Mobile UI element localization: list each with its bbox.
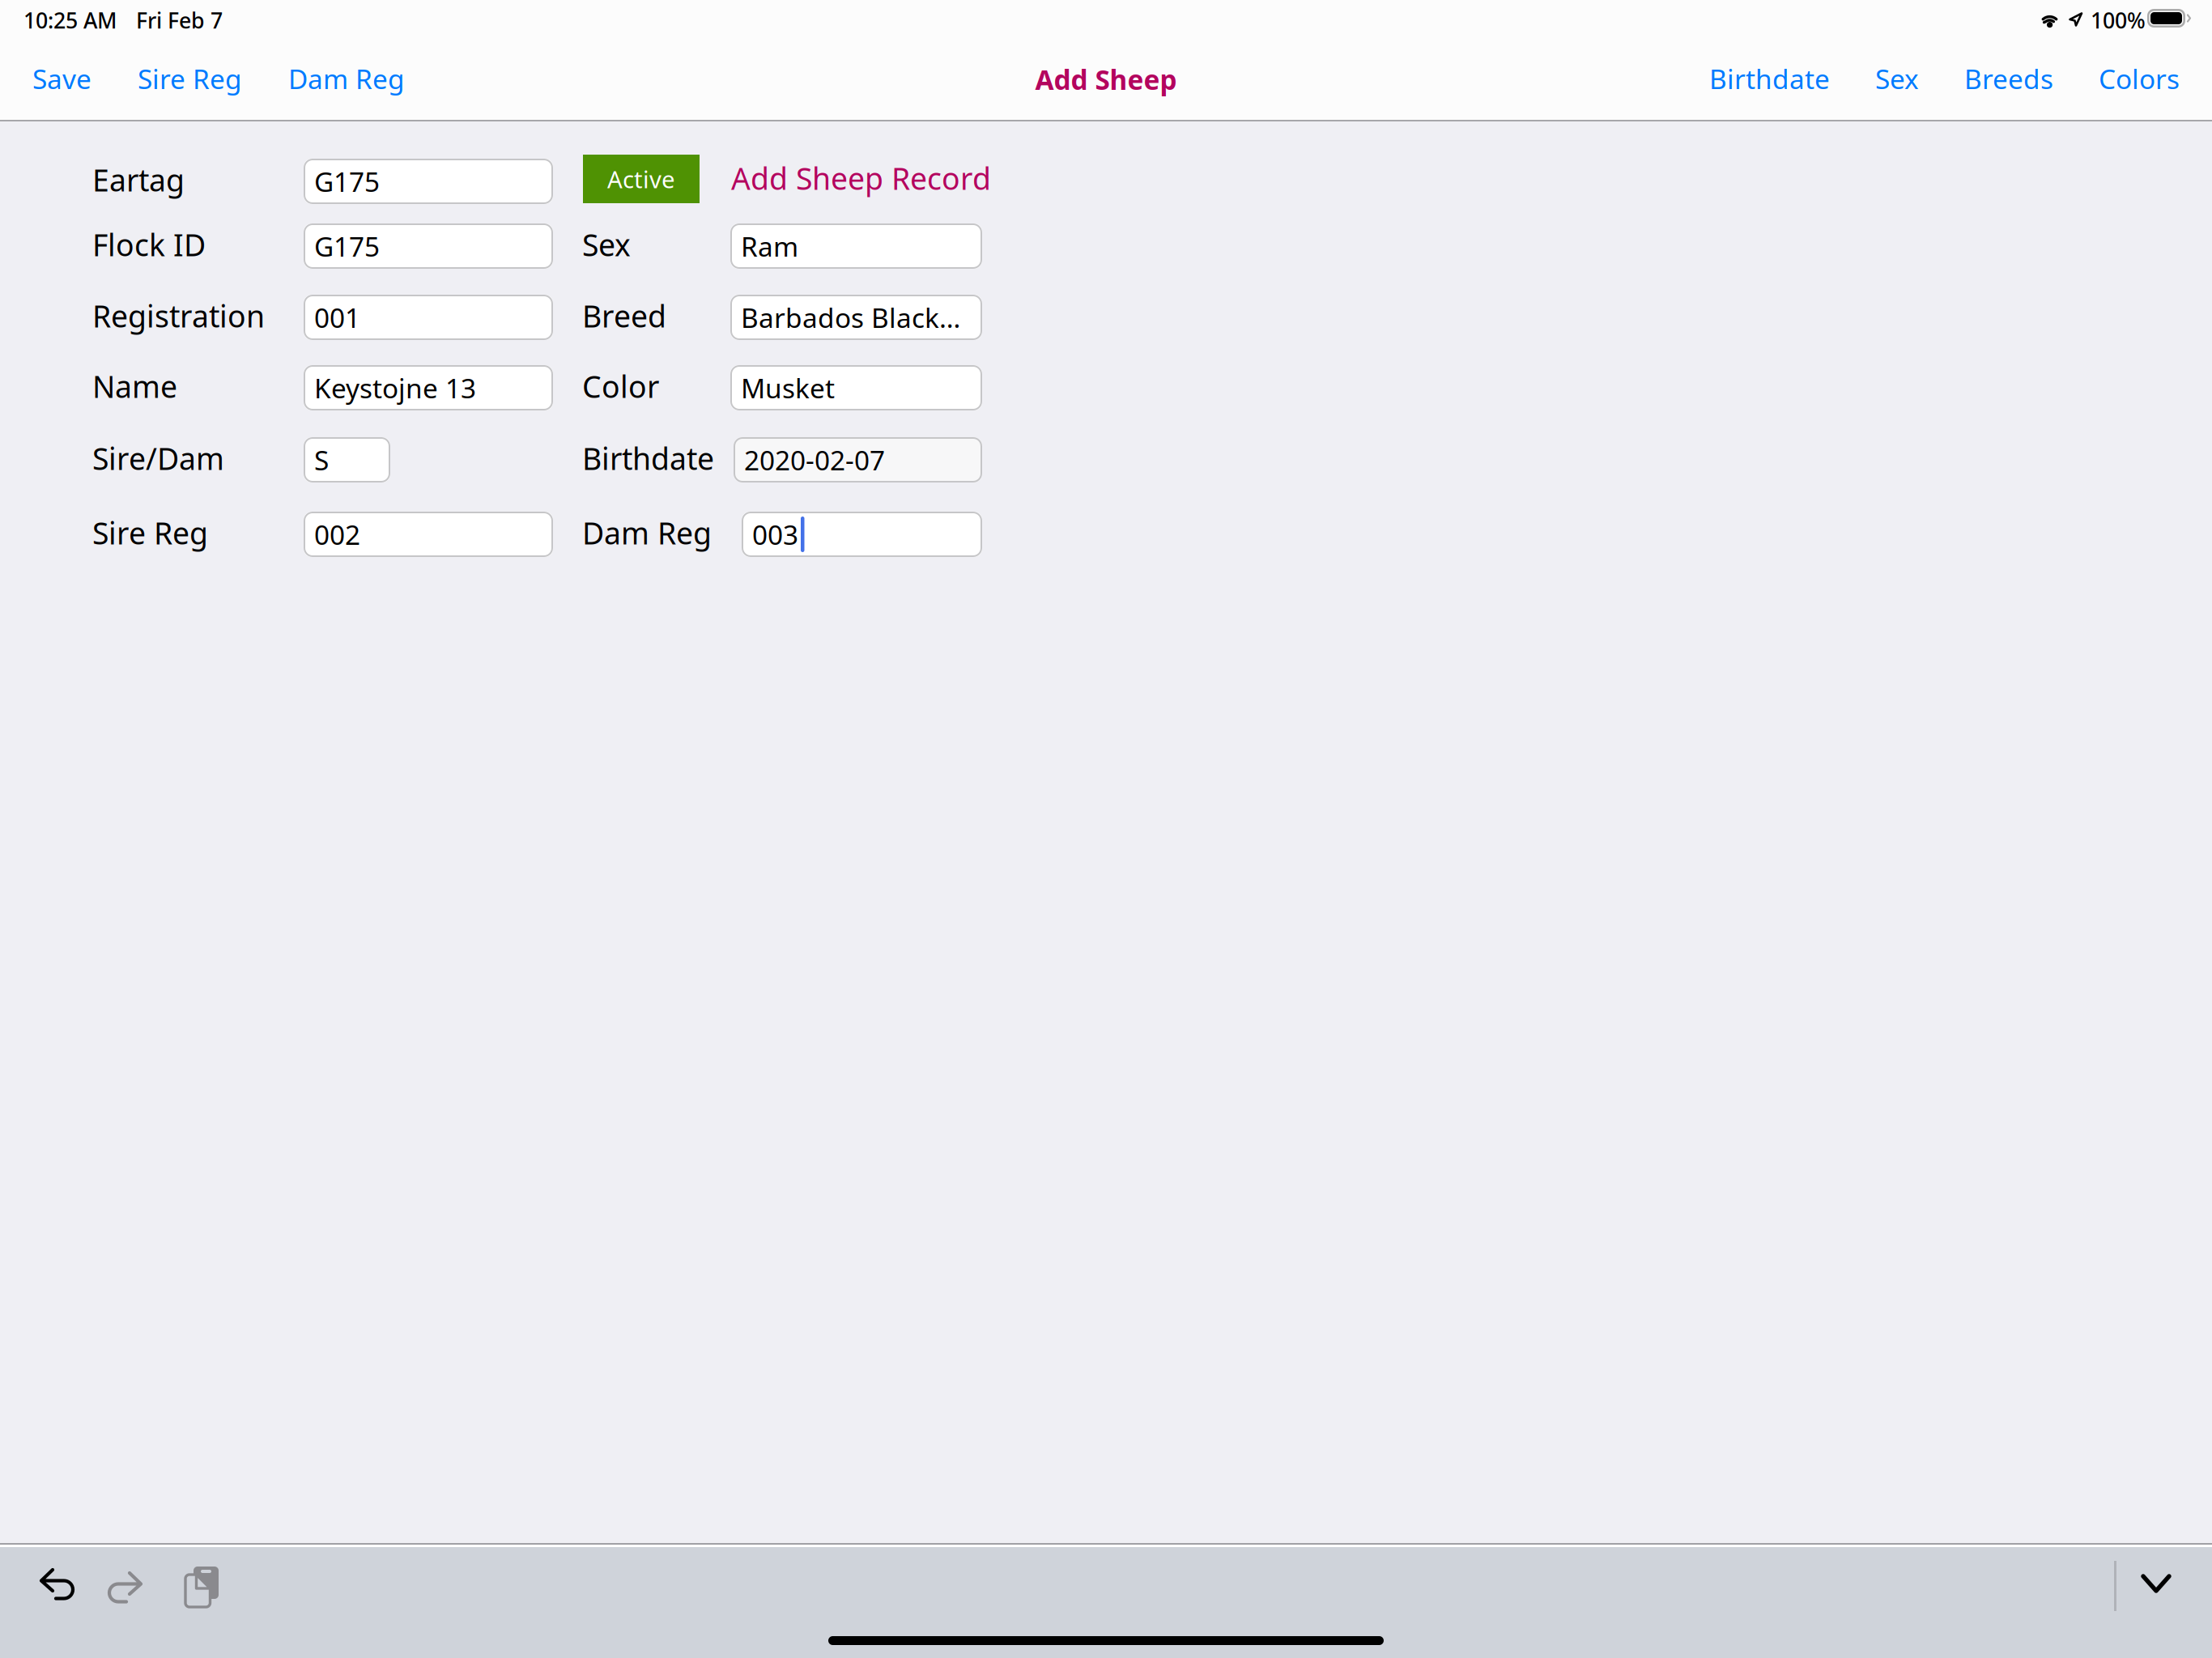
- staticText: G175: [314, 228, 380, 264]
- staticText: Keystojne 13: [314, 370, 476, 406]
- staticText: Add Sheep Record: [731, 158, 991, 198]
- button[interactable]: Sire Reg: [128, 41, 252, 116]
- staticText: Fri Feb 7: [136, 6, 223, 35]
- button[interactable]: Keystojne 13: [304, 365, 553, 410]
- button[interactable]: 002: [304, 512, 553, 557]
- staticText: Birthdate: [1709, 61, 1830, 97]
- button[interactable]: 003: [742, 512, 982, 557]
- button[interactable]: Barbados Black…: [730, 295, 982, 340]
- button[interactable]: Ram: [730, 223, 982, 269]
- staticText: Save: [32, 61, 91, 97]
- staticText: Eartag: [92, 160, 185, 200]
- button[interactable]: S: [304, 437, 390, 483]
- staticText: Color: [582, 366, 659, 406]
- staticText: 2020-02-07: [744, 442, 885, 478]
- button[interactable]: Birthdate: [1699, 41, 1840, 116]
- button[interactable]: Active: [583, 155, 700, 203]
- staticText: 10:25 AM: [23, 6, 117, 35]
- staticText: Dam Reg: [582, 513, 712, 553]
- staticText: Sire Reg: [138, 61, 242, 97]
- staticText: 002: [314, 516, 360, 552]
- button[interactable]: Colors: [2089, 41, 2189, 116]
- staticText: Colors: [2099, 61, 2180, 97]
- button[interactable]: Redo: [113, 1567, 151, 1606]
- staticText: Flock ID: [92, 224, 206, 265]
- button[interactable]: Undo: [36, 1564, 74, 1603]
- button[interactable]: Sex: [1865, 41, 1929, 116]
- staticText: Registration: [92, 296, 265, 336]
- staticText: Birthdate: [582, 438, 714, 478]
- button[interactable]: Hide keyboard: [2141, 1574, 2172, 1595]
- staticText: Ram: [741, 228, 798, 264]
- staticText: G175: [314, 163, 380, 199]
- staticText: 001: [314, 299, 360, 335]
- staticText: Sire Reg: [92, 513, 208, 553]
- staticText: S: [314, 442, 329, 478]
- staticText: Breed: [582, 296, 666, 336]
- button[interactable]: Save: [23, 41, 101, 116]
- button[interactable]: Dam Reg: [279, 41, 415, 116]
- staticText: Sex: [1875, 61, 1919, 97]
- button[interactable]: Musket: [730, 365, 982, 410]
- staticText: Sire/Dam: [92, 438, 224, 478]
- staticText: Sex: [582, 224, 631, 265]
- staticText: Active: [607, 163, 675, 195]
- staticText: Name: [92, 366, 177, 406]
- staticText: Barbados Black…: [741, 299, 960, 335]
- staticText: 003: [752, 516, 798, 552]
- button[interactable]: Breeds: [1955, 41, 2063, 116]
- staticText: Add Sheep: [1035, 61, 1177, 97]
- staticText: Musket: [741, 370, 835, 406]
- button[interactable]: Paste: [182, 1562, 219, 1609]
- button[interactable]: 001: [304, 295, 553, 340]
- button[interactable]: G175: [304, 223, 553, 269]
- staticText: 100%: [2091, 6, 2146, 35]
- button[interactable]: G175: [304, 159, 553, 204]
- staticText: Breeds: [1964, 61, 2053, 97]
- button[interactable]: 2020-02-07: [734, 437, 982, 483]
- staticText: Dam Reg: [288, 61, 405, 97]
